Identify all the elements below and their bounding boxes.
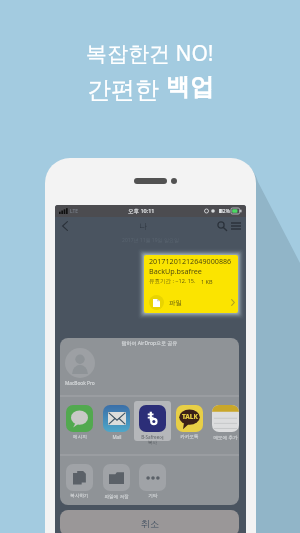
button[interactable]: Mail xyxy=(98,401,135,441)
staticText: BackUp.bsafree xyxy=(149,266,202,276)
button[interactable]: 메모에 추가 xyxy=(207,401,239,441)
staticText: 복잡한건 NO! xyxy=(86,39,214,68)
staticText: TALK xyxy=(182,412,198,421)
button[interactable]: 20171201212649000886 xyxy=(144,255,238,313)
staticText: Mail xyxy=(112,434,122,440)
staticText: 백업 xyxy=(166,72,214,102)
button[interactable]: MacBook Pro xyxy=(65,348,95,387)
staticText: 파일에 저장 xyxy=(104,493,129,499)
staticText: 메모에 추가 xyxy=(213,434,238,440)
staticText: 82% xyxy=(220,208,230,215)
staticText: 메시지 xyxy=(73,434,87,440)
button[interactable]: 복사하기 xyxy=(61,460,98,500)
button[interactable]: TALK xyxy=(171,401,208,441)
button[interactable]: Back xyxy=(58,218,72,234)
staticText: LTE xyxy=(70,208,79,215)
button[interactable]: 기타 xyxy=(134,460,171,500)
button[interactable]: Search xyxy=(215,218,229,234)
staticText: 유효기간 : ~12. 15. xyxy=(149,277,196,285)
button[interactable]: Menu xyxy=(229,218,243,234)
button[interactable]: B-Safree에 복사 xyxy=(134,401,171,441)
staticText: 탭하여 AirDrop으로 공유 xyxy=(60,340,239,347)
button[interactable]: 메시지 xyxy=(61,401,98,441)
staticText: 기타 xyxy=(148,493,158,499)
staticText: 1 KB xyxy=(201,278,213,285)
staticText: B-Safree에 복사 xyxy=(141,434,164,445)
staticText: 오후 10:11 xyxy=(128,207,155,215)
staticText: 취소 xyxy=(141,518,159,529)
button[interactable]: 취소 xyxy=(60,510,239,533)
staticText: 나 xyxy=(139,221,147,231)
staticText: 간편한 xyxy=(87,72,166,105)
staticText: 카카오톡 xyxy=(180,434,199,440)
staticText: 파일 xyxy=(169,299,182,307)
staticText: MacBook Pro xyxy=(65,380,95,387)
staticText: 20171201212649000886 xyxy=(149,256,232,266)
button[interactable]: 파일에 저장 xyxy=(98,460,135,500)
staticText: 복사하기 xyxy=(70,493,89,499)
